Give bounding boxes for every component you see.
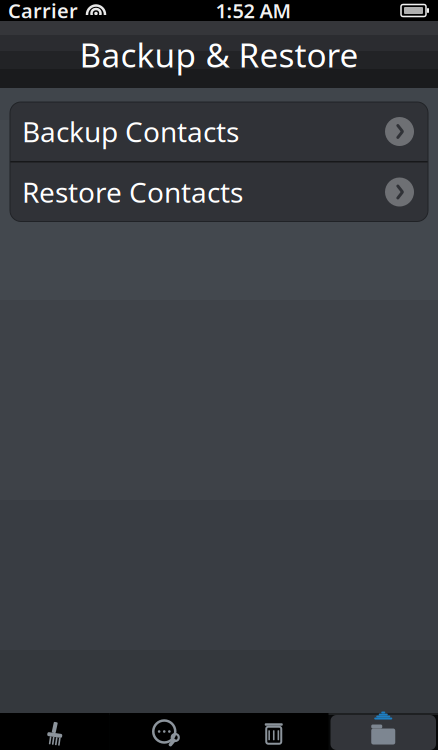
button[interactable]: Restore Contacts (10, 162, 428, 221)
staticText: Backup Contacts (22, 113, 239, 150)
button[interactable]: Backup Contacts (10, 102, 428, 161)
staticText: Backup & Restore (79, 32, 358, 77)
button[interactable]: Support (109, 713, 219, 750)
button[interactable]: Clean (0, 713, 109, 750)
staticText: Restore Contacts (22, 173, 243, 211)
staticText: Carrier (8, 0, 78, 24)
button[interactable]: Files (328, 713, 438, 750)
button[interactable]: Trash (219, 713, 328, 750)
staticText: 1:52 AM (215, 0, 291, 24)
